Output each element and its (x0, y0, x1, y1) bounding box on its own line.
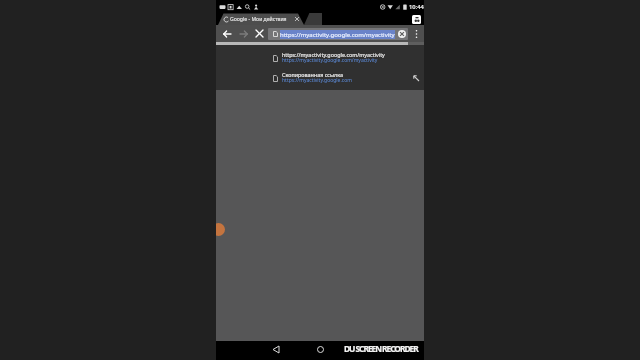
button[interactable]: Close tab (293, 15, 301, 23)
button[interactable]: Back (218, 25, 235, 42)
staticText: Скопированная ссылка (282, 71, 343, 78)
button[interactable]: Stop loading (251, 25, 268, 42)
button[interactable]: Edit suggestion (411, 73, 421, 83)
staticText: DU SCREEN RECORDER (344, 343, 418, 354)
staticText: https://myactivity.google.com (282, 77, 352, 84)
button[interactable]: https://myactivity.google.com/myactivity (216, 47, 424, 69)
staticText: 10:44 (409, 3, 424, 11)
button[interactable]: https://myactivity.google.com/myactivity (268, 28, 408, 40)
button[interactable]: Google - Мои действия (216, 13, 304, 25)
staticText: Google - Мои действия (230, 16, 287, 23)
button[interactable]: Forward (235, 25, 252, 42)
button[interactable]: Home (312, 340, 328, 359)
staticText: https://myactivity.google.com/myactivity (280, 31, 395, 39)
staticText: https://myactivity.google.com/myactivity (282, 57, 378, 64)
staticText: https://myactivity.google.com/myactivity (282, 51, 385, 58)
button[interactable]: Back (268, 340, 284, 359)
button[interactable]: Clear text (395, 25, 409, 42)
button[interactable]: Recorder floating button (216, 223, 225, 236)
button[interactable]: Screen recorder (412, 15, 421, 24)
button[interactable]: More options (409, 25, 423, 42)
button[interactable]: Скопированная ссылка (216, 67, 424, 89)
